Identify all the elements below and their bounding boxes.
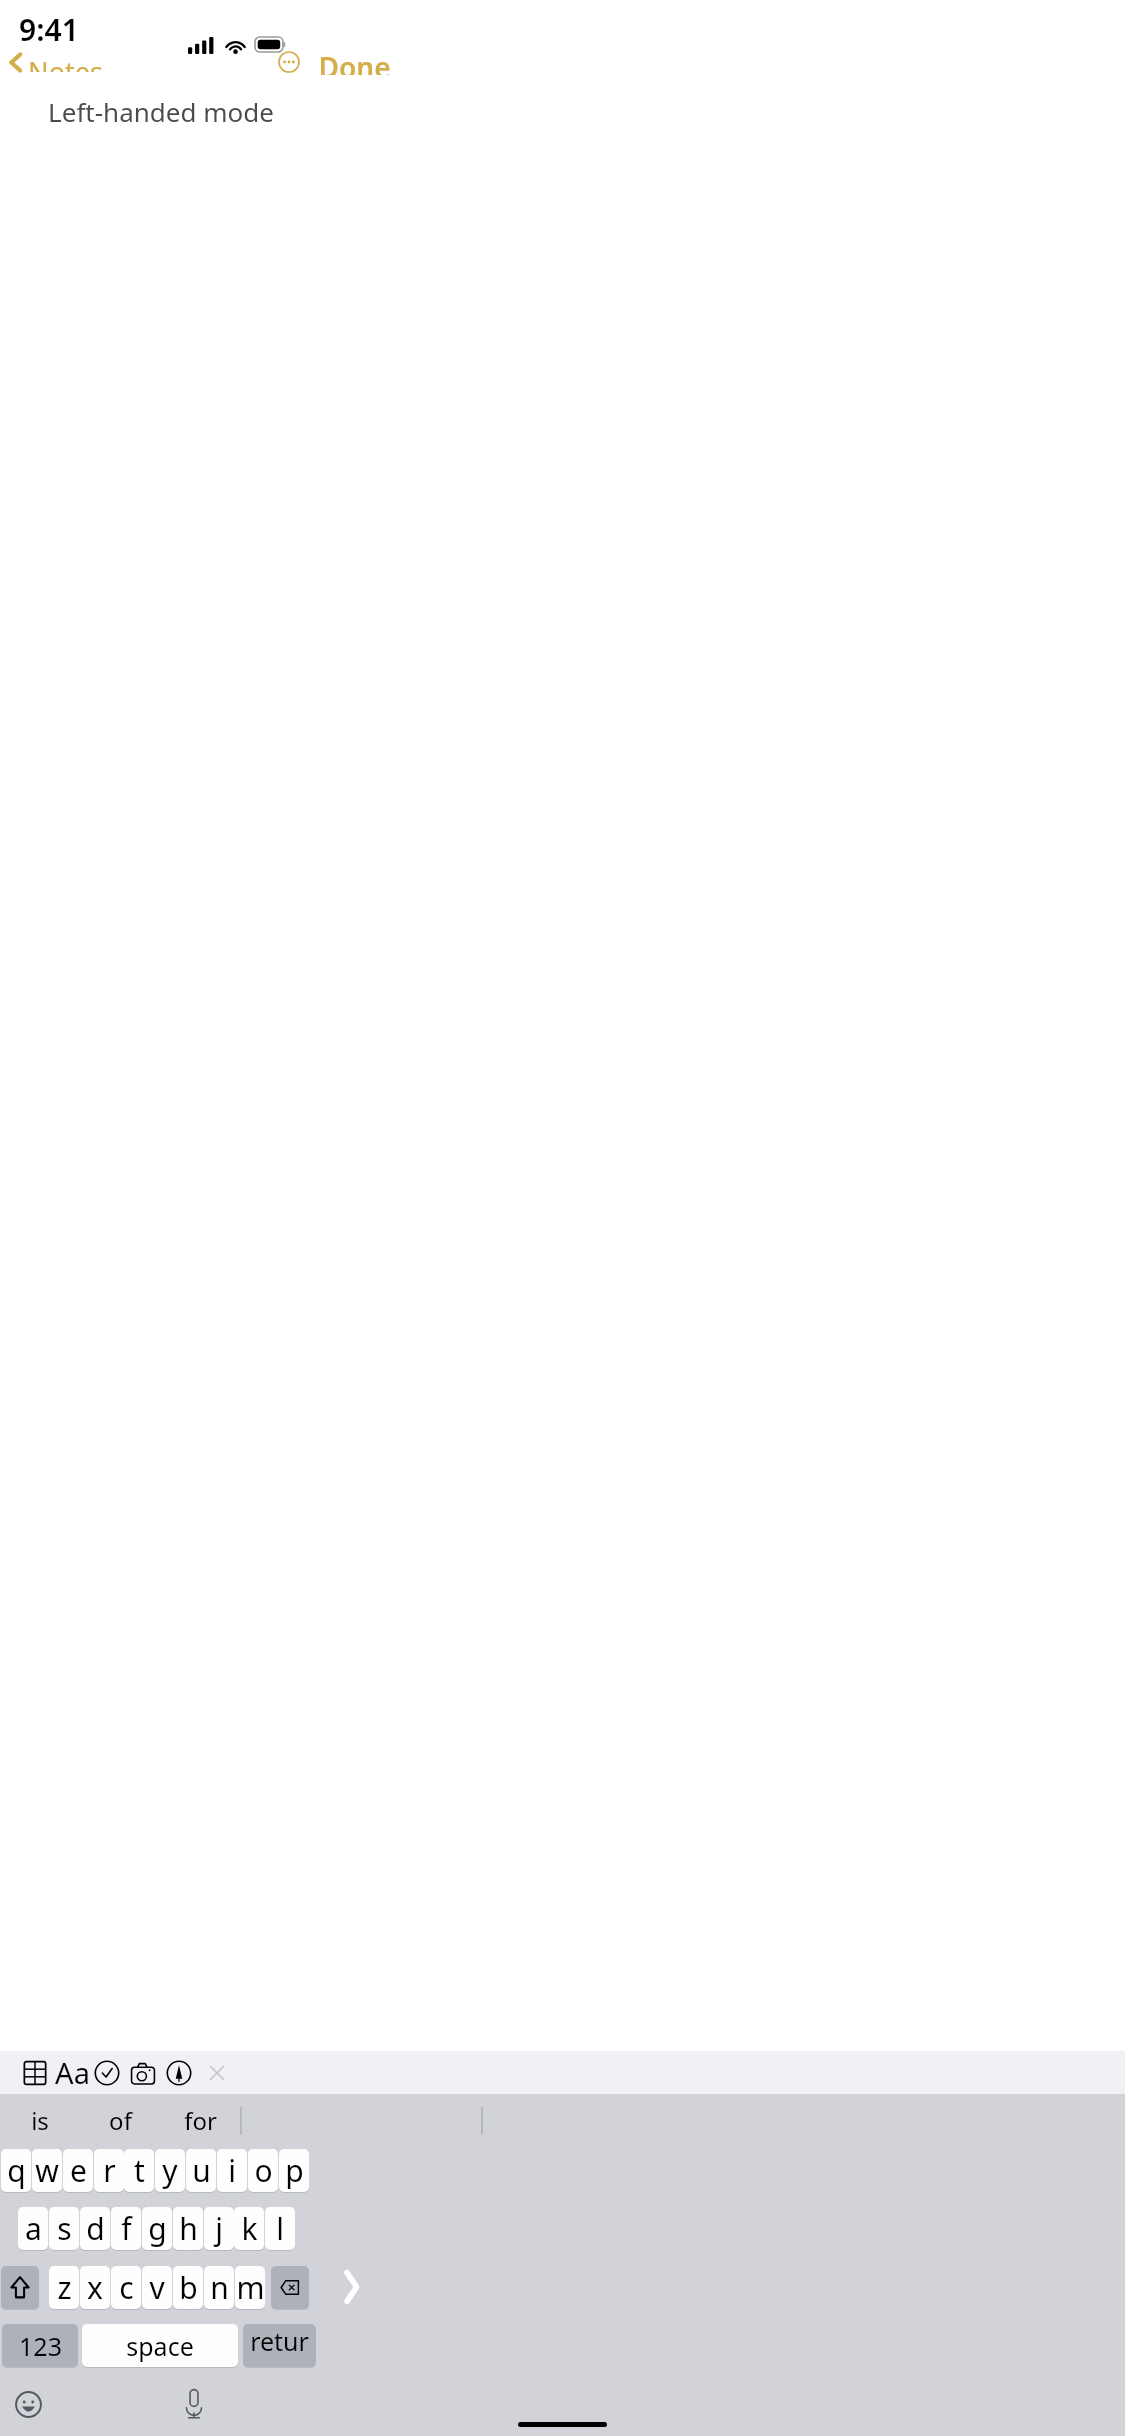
button[interactable]: Hide keyboard xyxy=(197,2051,237,2094)
button[interactable]: z xyxy=(49,2266,79,2309)
staticText: y xyxy=(162,2150,178,2191)
button[interactable]: n xyxy=(204,2266,234,2309)
button[interactable]: for xyxy=(164,2094,237,2146)
staticText: Notes xyxy=(28,53,103,72)
staticText: m xyxy=(236,2267,265,2308)
staticText: p xyxy=(285,2150,304,2191)
staticText: u xyxy=(192,2150,211,2191)
button[interactable]: return xyxy=(243,2324,316,2367)
button[interactable]: space xyxy=(82,2324,238,2367)
staticText: r xyxy=(103,2150,116,2191)
staticText: e xyxy=(70,2150,87,2191)
button[interactable]: r xyxy=(94,2149,124,2192)
button[interactable]: o xyxy=(248,2149,278,2192)
staticText: o xyxy=(254,2150,273,2191)
staticText: n xyxy=(210,2267,229,2308)
staticText: for xyxy=(184,2104,217,2137)
button[interactable]: Notes xyxy=(3,49,109,76)
button[interactable]: Done xyxy=(312,48,397,75)
button[interactable]: Shift xyxy=(1,2266,39,2309)
button[interactable]: p xyxy=(279,2149,309,2192)
staticText: k xyxy=(241,2208,258,2249)
button[interactable]: Table xyxy=(15,2051,55,2094)
button[interactable]: Camera xyxy=(123,2051,163,2094)
button[interactable]: b xyxy=(173,2266,203,2309)
button[interactable]: Checklist xyxy=(87,2051,127,2094)
staticText: w xyxy=(35,2150,59,2191)
button[interactable]: c xyxy=(111,2266,141,2309)
button[interactable]: m xyxy=(235,2266,265,2309)
staticText: space xyxy=(126,2329,194,2363)
staticText: c xyxy=(119,2267,134,2308)
button[interactable]: Emoji xyxy=(10,2384,47,2424)
staticText: i xyxy=(228,2150,236,2191)
staticText: a xyxy=(25,2208,42,2249)
button[interactable]: e xyxy=(63,2149,93,2192)
staticText: h xyxy=(179,2208,198,2249)
button[interactable]: f xyxy=(111,2207,141,2250)
button[interactable]: j xyxy=(204,2207,234,2250)
button[interactable]: l xyxy=(265,2207,295,2250)
staticText: x xyxy=(87,2267,103,2308)
button[interactable]: g xyxy=(142,2207,172,2250)
staticText: b xyxy=(179,2267,198,2308)
button[interactable]: of xyxy=(84,2094,157,2146)
staticText: 123 xyxy=(19,2329,62,2363)
button[interactable]: i xyxy=(217,2149,247,2192)
button[interactable]: a xyxy=(18,2207,48,2250)
button[interactable]: Expand keyboard xyxy=(333,2262,370,2312)
button[interactable]: x xyxy=(80,2266,110,2309)
staticText: Done xyxy=(318,48,391,75)
button[interactable]: More options xyxy=(273,48,305,75)
staticText: z xyxy=(57,2267,72,2308)
staticText: 9:41 xyxy=(19,9,79,50)
staticText: return xyxy=(243,2324,316,2367)
button[interactable]: v xyxy=(142,2266,172,2309)
button[interactable]: h xyxy=(173,2207,203,2250)
button[interactable]: t xyxy=(124,2149,154,2192)
staticText: f xyxy=(121,2208,132,2249)
staticText: Aa xyxy=(55,2053,90,2092)
button[interactable]: 123 xyxy=(2,2324,78,2367)
staticText: d xyxy=(86,2208,105,2249)
staticText: v xyxy=(149,2267,165,2308)
staticText: of xyxy=(109,2104,132,2137)
button[interactable]: Dictation xyxy=(175,2384,212,2424)
staticText: t xyxy=(134,2150,145,2191)
button[interactable]: k xyxy=(234,2207,264,2250)
button[interactable]: d xyxy=(80,2207,110,2250)
button[interactable]: u xyxy=(186,2149,216,2192)
button[interactable]: Markup xyxy=(159,2051,199,2094)
staticText: j xyxy=(215,2208,223,2249)
button[interactable]: y xyxy=(155,2149,185,2192)
staticText: is xyxy=(31,2104,49,2137)
button[interactable]: Text format xyxy=(52,2051,92,2094)
staticText: Left-handed mode xyxy=(48,94,274,129)
button[interactable]: w xyxy=(32,2149,62,2192)
button[interactable]: s xyxy=(49,2207,79,2250)
staticText: g xyxy=(148,2208,167,2249)
staticText: s xyxy=(57,2208,72,2249)
button[interactable]: q xyxy=(1,2149,31,2192)
button[interactable]: is xyxy=(3,2094,76,2146)
button[interactable]: Backspace xyxy=(271,2266,309,2309)
staticText: l xyxy=(276,2208,284,2249)
staticText: q xyxy=(7,2150,26,2191)
